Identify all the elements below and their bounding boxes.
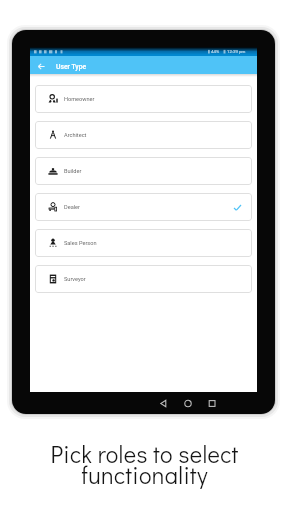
staticText: Surveyor	[64, 276, 86, 283]
button[interactable]: Architect	[35, 121, 252, 149]
button[interactable]: Builder	[35, 157, 252, 185]
staticText: User Type	[56, 63, 87, 71]
staticText: Builder	[64, 168, 82, 175]
staticText: Homeowner	[64, 96, 95, 103]
staticText: 44%	[211, 49, 220, 54]
button[interactable]: Sales Person	[35, 229, 252, 257]
staticText: Architect	[64, 132, 87, 139]
staticText: functionality	[81, 459, 208, 490]
staticText: 12:39 pm	[227, 49, 246, 54]
staticText: Dealer	[64, 204, 80, 211]
staticText: Pick roles to select	[50, 438, 239, 469]
staticText: Sales Person	[64, 240, 97, 247]
button[interactable]: Dealer	[35, 193, 252, 221]
button[interactable]: Homeowner	[35, 85, 252, 113]
button[interactable]: Surveyor	[35, 265, 252, 293]
